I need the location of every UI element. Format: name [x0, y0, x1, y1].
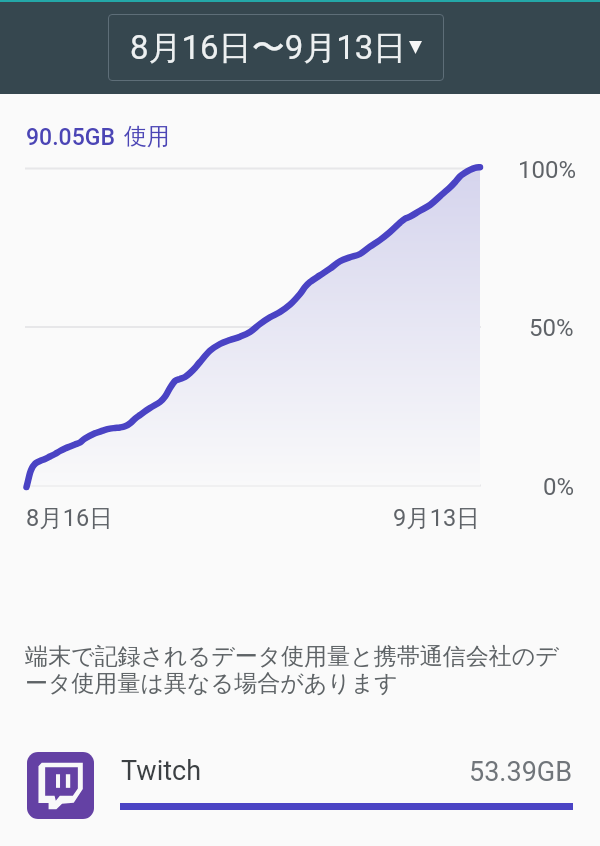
staticText: 8月16日〜9月13日	[130, 27, 407, 69]
button[interactable]: Twitch app icon	[0, 742, 600, 832]
staticText: 100%	[518, 156, 577, 184]
staticText: 8月16日	[26, 503, 113, 533]
button[interactable]: 8月16日〜9月13日	[108, 14, 444, 81]
staticText: 53.39GB	[469, 756, 573, 788]
staticText: Twitch	[121, 755, 202, 787]
staticText: 90.05GB	[26, 124, 115, 151]
staticText: 使用	[124, 122, 170, 151]
staticText: 50%	[529, 314, 574, 342]
staticText: 9月13日	[393, 503, 480, 533]
staticText: 端末で記録されるデータ使用量と携帯通信会社のデータ使用量は異なる場合があります	[25, 642, 577, 698]
staticText: 0%	[543, 473, 575, 501]
other: Twitch app icon	[27, 752, 94, 819]
